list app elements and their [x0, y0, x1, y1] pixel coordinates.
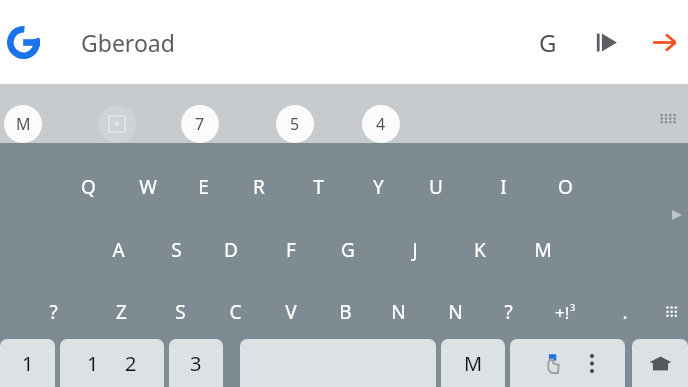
- button[interactable]: W: [124, 167, 172, 207]
- staticText: 2: [125, 350, 137, 377]
- staticText: D: [224, 237, 238, 263]
- staticText: 3: [570, 301, 576, 313]
- button[interactable]: ?: [484, 292, 532, 332]
- staticText: G: [539, 26, 557, 59]
- button[interactable]: Space: [240, 339, 436, 387]
- staticText: S: [171, 237, 182, 263]
- button[interactable]: D: [207, 230, 255, 270]
- staticText: M: [534, 237, 552, 263]
- button[interactable]: K: [456, 230, 504, 270]
- staticText: E: [198, 174, 209, 200]
- staticText: ?: [49, 299, 58, 325]
- button[interactable]: 5: [276, 105, 314, 143]
- staticText: Y: [373, 174, 384, 200]
- staticText: T: [313, 174, 324, 200]
- button[interactable]: 1: [60, 339, 164, 387]
- button[interactable]: Z: [97, 292, 145, 332]
- button[interactable]: Image suggestion: [98, 105, 136, 143]
- staticText: B: [339, 299, 352, 325]
- staticText: ?: [504, 299, 513, 325]
- staticText: M: [464, 350, 483, 377]
- button[interactable]: More suggestions: [652, 104, 680, 132]
- staticText: V: [285, 299, 297, 325]
- button[interactable]: 1: [0, 339, 55, 387]
- staticText: N: [448, 299, 463, 325]
- button[interactable]: Keyboard layouts: [659, 299, 685, 325]
- staticText: J: [412, 237, 418, 263]
- button[interactable]: .: [601, 292, 649, 332]
- staticText: .: [622, 299, 628, 325]
- staticText: 4: [376, 113, 386, 135]
- button[interactable]: Y: [354, 167, 402, 207]
- button[interactable]: ?: [29, 292, 77, 332]
- staticText: M: [16, 113, 31, 135]
- button[interactable]: S: [156, 292, 204, 332]
- button[interactable]: [632, 339, 688, 387]
- button[interactable]: R: [235, 167, 283, 207]
- staticText: Gberoad: [81, 27, 175, 58]
- staticText: 3: [190, 350, 202, 377]
- staticText: I: [500, 174, 507, 200]
- staticText: K: [474, 237, 486, 263]
- button[interactable]: Next: [668, 206, 686, 224]
- button[interactable]: A: [94, 230, 142, 270]
- staticText: S: [175, 299, 186, 325]
- button[interactable]: B: [321, 292, 369, 332]
- button[interactable]: N: [374, 292, 422, 332]
- staticText: 5: [290, 113, 300, 135]
- button[interactable]: F: [267, 230, 315, 270]
- button[interactable]: O: [541, 167, 589, 207]
- staticText: C: [229, 299, 242, 325]
- button[interactable]: +!: [539, 294, 591, 330]
- staticText: R: [253, 174, 265, 200]
- button[interactable]: I: [479, 167, 527, 207]
- staticText: O: [558, 174, 573, 200]
- staticText: F: [286, 237, 296, 263]
- staticText: Z: [116, 299, 127, 325]
- button[interactable]: 7: [181, 105, 219, 143]
- button[interactable]: S: [152, 230, 200, 270]
- staticText: U: [429, 174, 443, 200]
- button[interactable]: U: [412, 167, 460, 207]
- staticText: Q: [81, 174, 96, 200]
- button[interactable]: C: [211, 292, 259, 332]
- staticText: W: [139, 174, 157, 200]
- staticText: 1: [22, 350, 34, 377]
- staticText: G: [341, 237, 355, 263]
- staticText: +!: [555, 301, 570, 324]
- staticText: N: [391, 299, 406, 325]
- button[interactable]: V: [267, 292, 315, 332]
- button[interactable]: Google: [2, 21, 44, 63]
- button[interactable]: M: [441, 339, 505, 387]
- button[interactable]: [510, 339, 625, 387]
- button[interactable]: M: [4, 105, 42, 143]
- button[interactable]: N: [431, 292, 479, 332]
- button[interactable]: Play: [586, 22, 626, 62]
- button[interactable]: 4: [362, 105, 400, 143]
- button[interactable]: Google search: [528, 22, 568, 62]
- button[interactable]: Q: [64, 167, 112, 207]
- button[interactable]: M: [519, 230, 567, 270]
- staticText: 1: [87, 350, 99, 377]
- staticText: A: [112, 237, 125, 263]
- button[interactable]: T: [294, 167, 342, 207]
- staticText: 7: [195, 113, 205, 135]
- button[interactable]: J: [391, 230, 439, 270]
- button[interactable]: E: [179, 167, 227, 207]
- button[interactable]: 3: [169, 339, 223, 387]
- button[interactable]: Go: [644, 22, 684, 62]
- button[interactable]: G: [324, 230, 372, 270]
